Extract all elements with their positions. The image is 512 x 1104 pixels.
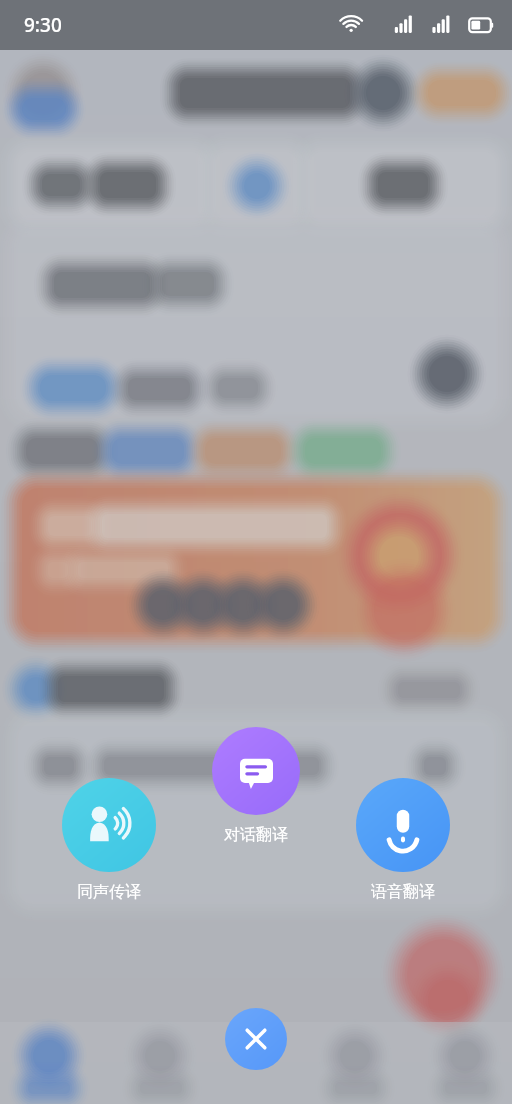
button[interactable]: 语音翻译	[356, 778, 450, 872]
staticText: 同声传译	[77, 882, 141, 902]
staticText: 对话翻译	[224, 825, 288, 845]
button[interactable]: 对话翻译	[212, 727, 300, 815]
button[interactable]: 关闭	[225, 1008, 287, 1070]
staticText: 语音翻译	[371, 882, 435, 902]
staticText: 9:30	[24, 12, 62, 38]
button[interactable]: 同声传译	[62, 778, 156, 872]
